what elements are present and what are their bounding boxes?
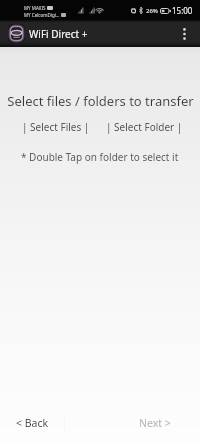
button[interactable]: Next > <box>109 400 200 445</box>
staticText: * Double Tap on folder to select it <box>21 150 179 164</box>
staticText: | Select Files | <box>22 120 90 134</box>
button[interactable]: | Select Files | <box>15 118 97 135</box>
button[interactable]: More options <box>178 20 191 47</box>
staticText: 15:00 <box>172 5 193 16</box>
staticText: MY CelcomDigi... <box>24 12 60 18</box>
staticText: 26% <box>146 7 158 15</box>
staticText: Next > <box>139 416 171 430</box>
staticText: MY MAXIS <box>24 5 46 11</box>
staticText: < Back <box>16 416 49 430</box>
staticText: | Select Folder | <box>106 120 183 134</box>
button[interactable]: | Select Folder | <box>103 118 185 135</box>
staticText: WiFi Direct + <box>29 27 88 41</box>
staticText: Select files / folders to transfer <box>7 92 194 110</box>
button[interactable]: < Back <box>0 400 65 445</box>
